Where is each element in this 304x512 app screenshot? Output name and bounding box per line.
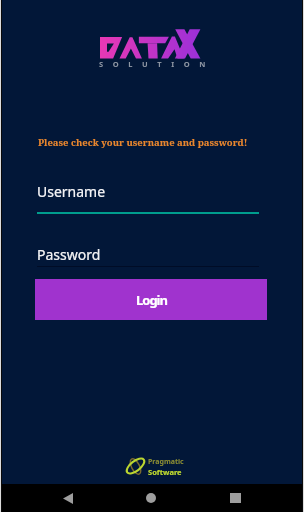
staticText: Password — [37, 245, 101, 264]
button[interactable]: Home — [137, 484, 165, 512]
staticText: Username — [37, 182, 106, 201]
staticText: Login — [136, 291, 167, 309]
button[interactable]: Login — [35, 279, 267, 320]
staticText: Please check your username and password! — [38, 136, 248, 149]
button[interactable]: Back — [54, 484, 82, 512]
staticText: Software — [148, 467, 182, 477]
staticText: SOLUTION — [99, 59, 215, 69]
staticText: Pragmatic — [148, 457, 184, 467]
button[interactable]: Recent apps — [221, 484, 249, 512]
